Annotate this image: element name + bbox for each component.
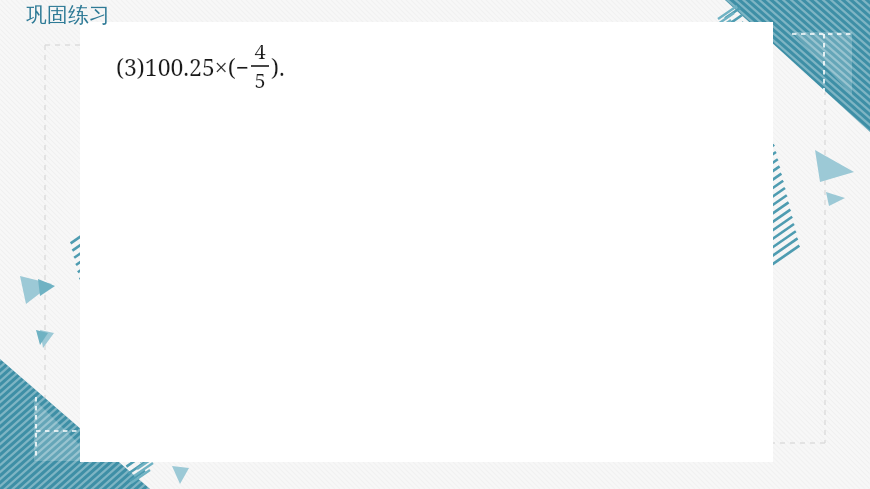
- button[interactable]: 巩固练习: [24, 1, 112, 29]
- other: Decorative corner graphic: [720, 0, 870, 135]
- staticText: 4: [254, 38, 266, 65]
- staticText: ).: [271, 51, 285, 82]
- staticText: 5: [254, 67, 266, 94]
- button[interactable]: (3)100.25×(−: [116, 38, 285, 94]
- staticText: 巩固练习: [26, 2, 110, 28]
- staticText: (3)100.25×(−: [116, 51, 249, 82]
